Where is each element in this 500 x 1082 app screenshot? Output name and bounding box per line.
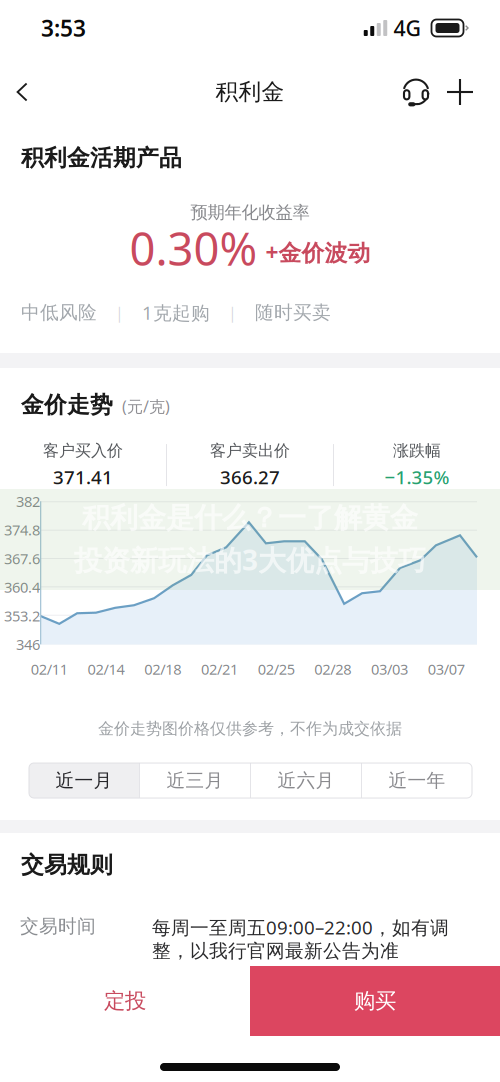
staticText: 交易时间 [20,915,96,938]
staticText: | [115,302,124,323]
staticText: 购买 [354,988,396,1014]
staticText: 客户卖出价 [210,441,290,460]
button[interactable]: Back [0,66,44,118]
staticText: 近六月 [277,769,334,792]
staticText: 积利金是什么？一了解黄金 [82,501,418,535]
staticText: 涨跌幅 [393,441,441,460]
staticText: 近一月 [55,769,112,792]
staticText: 交易规则 [21,851,113,879]
button[interactable]: 近一月 [29,763,139,798]
staticText: 02/21 [201,659,238,679]
staticText: 预期年化收益率 [190,202,309,223]
staticText: 02/28 [314,659,351,679]
staticText: 1克起购 [142,300,210,325]
staticText: 02/11 [31,659,68,679]
staticText: 03/07 [428,659,465,679]
staticText: 随时买卖 [255,301,331,324]
staticText: 定投 [104,988,146,1014]
staticText: 金价走势 [21,391,113,419]
staticText: 每周一至周五09:00–22:00，如有调整，以我行官网最新公告为准 [152,915,449,962]
staticText: 353.2 [4,606,40,625]
button[interactable]: 购买 [250,966,500,1036]
staticText: 02/18 [144,659,181,679]
staticText: 367.6 [4,549,40,568]
staticText: 客户买入价 [43,441,123,460]
button[interactable]: 近三月 [140,763,250,798]
staticText: 积利金 [215,78,284,106]
staticText: 360.4 [4,577,40,597]
staticText: +金价波动 [265,237,370,267]
button[interactable]: 近六月 [251,763,361,798]
staticText: 近三月 [166,769,223,792]
staticText: 346 [16,634,40,654]
staticText: | [228,302,237,323]
staticText: 中低风险 [21,301,97,324]
staticText: 3:53 [41,13,86,43]
staticText: 金价走势图价格仅供参考，不作为成交依据 [98,719,402,738]
button[interactable]: 近一年 [362,763,472,798]
staticText: 02/14 [88,659,125,679]
staticText: 371.41 [53,464,113,489]
staticText: 02/25 [258,659,295,679]
staticText: 374.8 [4,520,40,540]
staticText: 近一年 [388,769,445,792]
staticText: 投资新玩法的3大优点与技巧 [74,541,426,578]
button[interactable]: Customer service [394,66,438,118]
staticText: −1.35% [384,464,449,489]
staticText: 4G [393,14,421,42]
staticText: 03/03 [371,659,408,679]
staticText: 366.27 [220,464,280,489]
button[interactable]: Add [438,66,482,118]
button[interactable]: 定投 [0,966,250,1036]
staticText: 382 [16,491,40,511]
staticText: 0.30% [129,218,257,278]
staticText: (元/克) [122,396,170,417]
staticText: 积利金活期产品 [21,144,182,172]
